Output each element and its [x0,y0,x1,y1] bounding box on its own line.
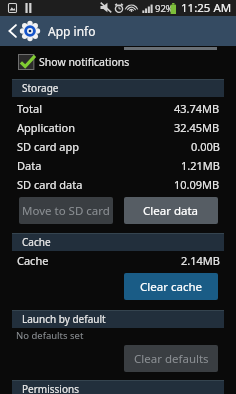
staticText: Launch by default [22,312,106,326]
staticText: Move to SD card [22,203,110,219]
staticText: 11:25 AM [181,0,232,16]
staticText: Application [17,120,75,135]
staticText: SD card app [17,139,80,154]
staticText: 1.21MB [181,158,220,173]
staticText: SD card data [17,177,83,192]
button[interactable]: Clear defaults [124,345,218,372]
button[interactable]: Move to SD card [19,197,113,224]
staticText: 92% [155,2,174,15]
staticText: Data [17,158,42,173]
staticText: No defaults set [16,329,84,342]
staticText: Clear defaults [134,351,209,367]
staticText: 2.14MB [181,253,220,268]
button[interactable]: Clear cache [124,273,218,300]
button[interactable]: Clear data [124,197,218,224]
staticText: Permissions [22,382,79,394]
staticText: App info [48,23,96,39]
staticText: Clear cache [140,279,202,295]
staticText: Cache [17,253,49,268]
button[interactable]: Show notifications [0,49,236,75]
button[interactable]: Back [3,16,22,46]
staticText: 10.09MB [174,177,220,192]
staticText: Storage [22,81,59,95]
staticText: 43.74MB [174,101,220,116]
staticText: 0.00B [191,139,220,154]
staticText: Cache [22,235,51,249]
staticText: Clear data [143,203,199,219]
staticText: 32.45MB [174,120,220,135]
staticText: Show notifications [39,55,130,69]
staticText: Total [17,101,42,116]
